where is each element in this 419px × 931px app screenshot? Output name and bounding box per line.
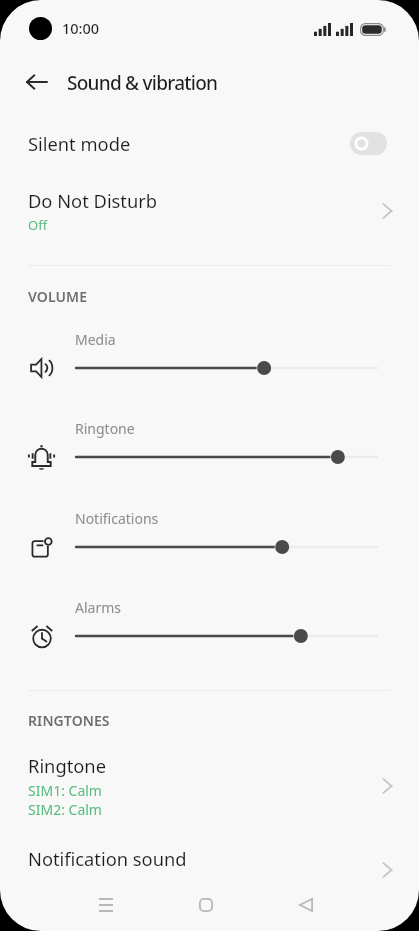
staticText: Ringtone: [75, 419, 135, 438]
staticText: SIM1: Calm: [28, 781, 102, 800]
staticText: Alarms: [75, 598, 121, 617]
button[interactable]: Back: [278, 877, 334, 931]
staticText: Notifications: [75, 509, 159, 528]
staticText: 10:00: [62, 18, 100, 38]
staticText: Off: [28, 216, 48, 234]
button[interactable]: Notifications: [0, 502, 419, 592]
button[interactable]: Notification sound: [0, 836, 419, 886]
staticText: Notification sound: [28, 846, 187, 871]
button[interactable]: Silent mode toggle: [350, 132, 387, 155]
button[interactable]: Ringtone: [0, 412, 419, 502]
button[interactable]: Back: [17, 62, 57, 102]
staticText: Media: [75, 330, 116, 349]
button[interactable]: Home: [178, 877, 234, 931]
button[interactable]: Silent mode: [0, 117, 419, 169]
button[interactable]: Alarms: [0, 591, 419, 681]
button[interactable]: Ringtone: [0, 746, 419, 826]
staticText: SIM2: Calm: [28, 800, 102, 819]
staticText: Sound & vibration: [67, 70, 218, 96]
button[interactable]: Do Not Disturb: [0, 183, 419, 245]
staticText: Ringtone: [28, 753, 106, 778]
button[interactable]: Recents: [78, 877, 134, 931]
staticText: Silent mode: [28, 131, 131, 156]
staticText: RINGTONES: [28, 711, 110, 730]
button[interactable]: Media: [0, 323, 419, 413]
staticText: Do Not Disturb: [28, 188, 158, 213]
staticText: VOLUME: [28, 287, 88, 306]
